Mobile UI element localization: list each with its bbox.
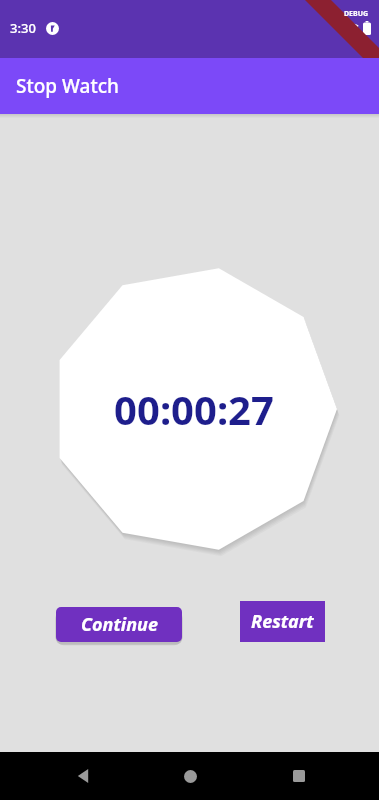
- button[interactable]: Recent apps: [277, 754, 321, 798]
- staticText: 3:30: [10, 19, 36, 37]
- staticText: Restart: [251, 609, 314, 634]
- button[interactable]: Home: [168, 754, 212, 798]
- button[interactable]: Continue: [56, 607, 182, 642]
- button[interactable]: Back: [62, 754, 106, 798]
- button[interactable]: Restart: [240, 601, 325, 642]
- staticText: DEBUG: [344, 9, 369, 19]
- staticText: Continue: [81, 612, 158, 637]
- staticText: 00:00:27: [114, 382, 274, 436]
- staticText: Stop Watch: [16, 73, 119, 99]
